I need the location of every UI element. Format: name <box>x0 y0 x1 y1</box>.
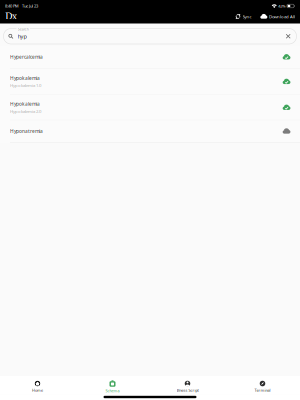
staticText: Illness Script <box>176 388 198 393</box>
button[interactable]: Clear search <box>284 32 292 40</box>
button[interactable]: Terminal <box>225 376 300 394</box>
staticText: Schema <box>105 388 119 393</box>
button[interactable]: Hypokalemia <box>0 95 300 120</box>
staticText: Search <box>18 27 29 32</box>
staticText: Hypokalemia <box>10 101 40 107</box>
button[interactable]: Sync <box>235 13 252 20</box>
button[interactable]: Home <box>0 376 75 394</box>
button[interactable]: Hypercalcemia <box>0 46 300 68</box>
staticText: 8:40 PM Tue Jul 23 <box>5 3 38 9</box>
staticText: Sync <box>243 14 252 19</box>
staticText: Hypercalcemia <box>10 54 43 60</box>
staticText: Hypokalemia <box>10 75 40 81</box>
staticText: Hypokalemia 2.0 <box>10 108 41 114</box>
staticText: Hypokalemia 1.0 <box>10 83 41 88</box>
staticText: Home <box>32 388 43 393</box>
staticText: 43% <box>278 3 285 9</box>
staticText: Terminal <box>254 388 270 393</box>
button[interactable]: Hyponatremia <box>0 120 300 142</box>
staticText: Dx <box>5 10 17 23</box>
staticText: hyp <box>17 32 26 40</box>
button[interactable]: Hypokalemia <box>0 69 300 95</box>
staticText: Download All <box>269 14 295 19</box>
staticText: Hyponatremia <box>10 128 43 134</box>
button[interactable]: Illness Script <box>150 376 225 394</box>
button[interactable]: Schema <box>75 376 150 395</box>
button[interactable]: Download All <box>252 13 295 20</box>
